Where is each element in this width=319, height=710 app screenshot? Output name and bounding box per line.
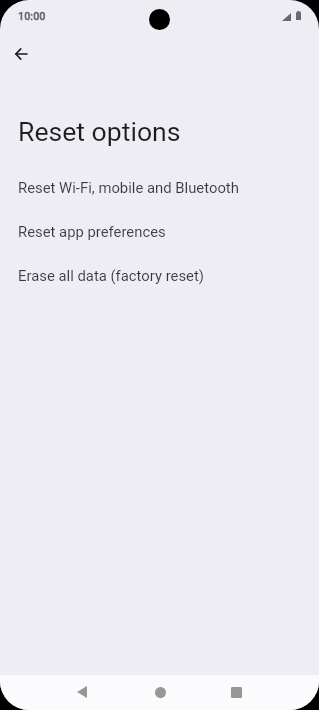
- staticText: Reset app preferences: [18, 223, 166, 240]
- staticText: Reset options: [18, 116, 181, 147]
- button[interactable]: Back: [6, 39, 36, 69]
- staticText: Erase all data (factory reset): [18, 267, 204, 284]
- button[interactable]: Home: [148, 680, 172, 704]
- button[interactable]: Erase all data (factory reset): [0, 253, 319, 297]
- button[interactable]: Reset Wi-Fi, mobile and Bluetooth: [0, 165, 319, 209]
- button[interactable]: Back: [70, 680, 94, 704]
- button[interactable]: Recent apps: [224, 680, 248, 704]
- staticText: 10:00: [18, 10, 46, 23]
- button[interactable]: Reset app preferences: [0, 209, 319, 253]
- staticText: Reset Wi-Fi, mobile and Bluetooth: [18, 179, 239, 196]
